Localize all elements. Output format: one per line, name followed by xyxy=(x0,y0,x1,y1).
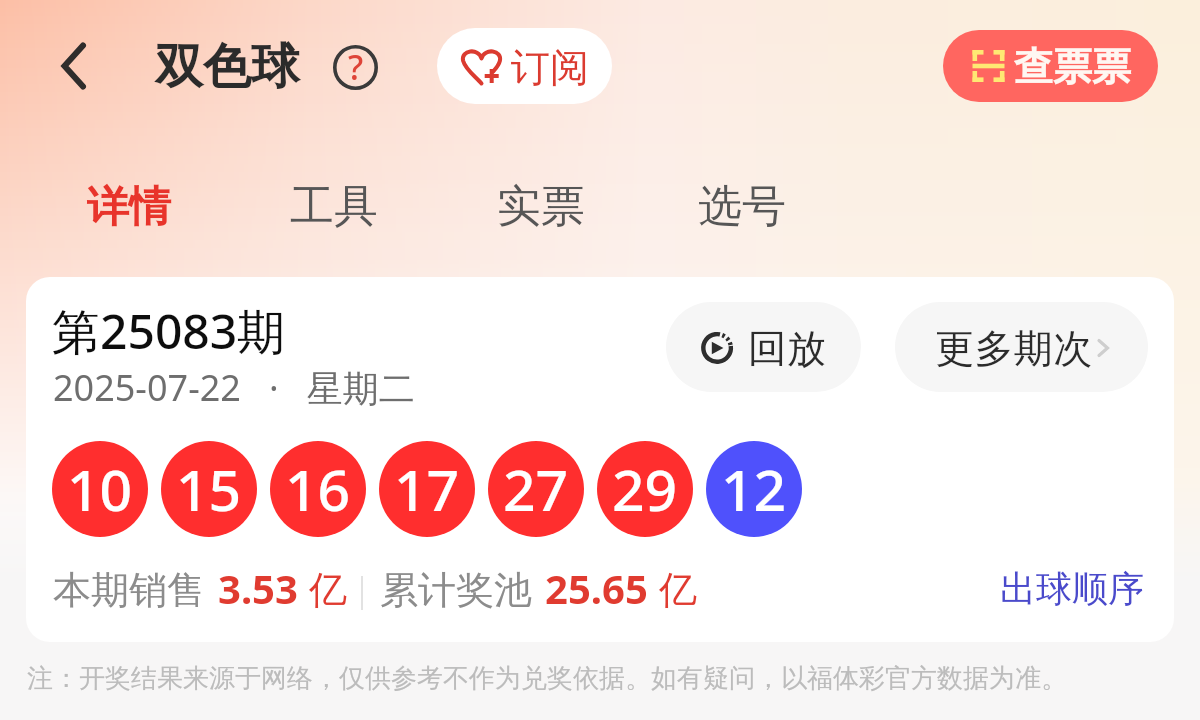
staticText: 双色球 xyxy=(155,37,299,97)
staticText: 16 xyxy=(285,450,351,528)
button[interactable]: 订阅 xyxy=(437,28,612,104)
button[interactable]: 实票 xyxy=(497,179,585,234)
button[interactable]: 详情 xyxy=(87,181,171,234)
staticText: 详情 xyxy=(87,181,171,234)
staticText: 亿 xyxy=(659,566,697,614)
button[interactable]: Help xyxy=(333,45,378,90)
staticText: 2025-07-22 · 星期二 xyxy=(53,363,415,412)
staticText: ? xyxy=(348,44,364,89)
staticText: 工具 xyxy=(290,179,378,234)
button[interactable]: 出球顺序 xyxy=(1000,566,1144,611)
staticText: 17 xyxy=(394,450,460,528)
staticText: 29 xyxy=(612,450,678,528)
staticText: 亿 xyxy=(309,566,347,614)
staticText: 25.65 xyxy=(545,561,648,615)
button[interactable]: 工具 xyxy=(290,179,378,234)
staticText: 15 xyxy=(176,450,242,528)
staticText: 查票票 xyxy=(1014,42,1131,91)
staticText: 累计奖池 xyxy=(380,566,532,614)
button[interactable]: 选号 xyxy=(698,179,786,234)
staticText: 实票 xyxy=(497,179,585,234)
staticText: 注：开奖结果来源于网络，仅供参考不作为兑奖依据。如有疑问，以福体彩官方数据为准。 xyxy=(27,662,1067,695)
staticText: 选号 xyxy=(698,179,786,234)
staticText: 3.53 xyxy=(218,561,298,615)
staticText: 第25083期 xyxy=(52,298,286,364)
button[interactable]: 回放 xyxy=(666,302,861,392)
staticText: 12 xyxy=(721,450,787,528)
staticText: 订阅 xyxy=(511,43,589,92)
button[interactable]: 查票票 xyxy=(943,30,1158,102)
button[interactable]: Back xyxy=(38,36,98,96)
staticText: 10 xyxy=(67,450,133,528)
button[interactable]: 更多期次 xyxy=(895,302,1148,392)
staticText: 更多期次 xyxy=(935,324,1093,373)
staticText: 27 xyxy=(503,450,569,528)
staticText: 出球顺序 xyxy=(1000,566,1144,611)
staticText: 本期销售 xyxy=(53,566,205,614)
staticText: 回放 xyxy=(748,324,826,373)
